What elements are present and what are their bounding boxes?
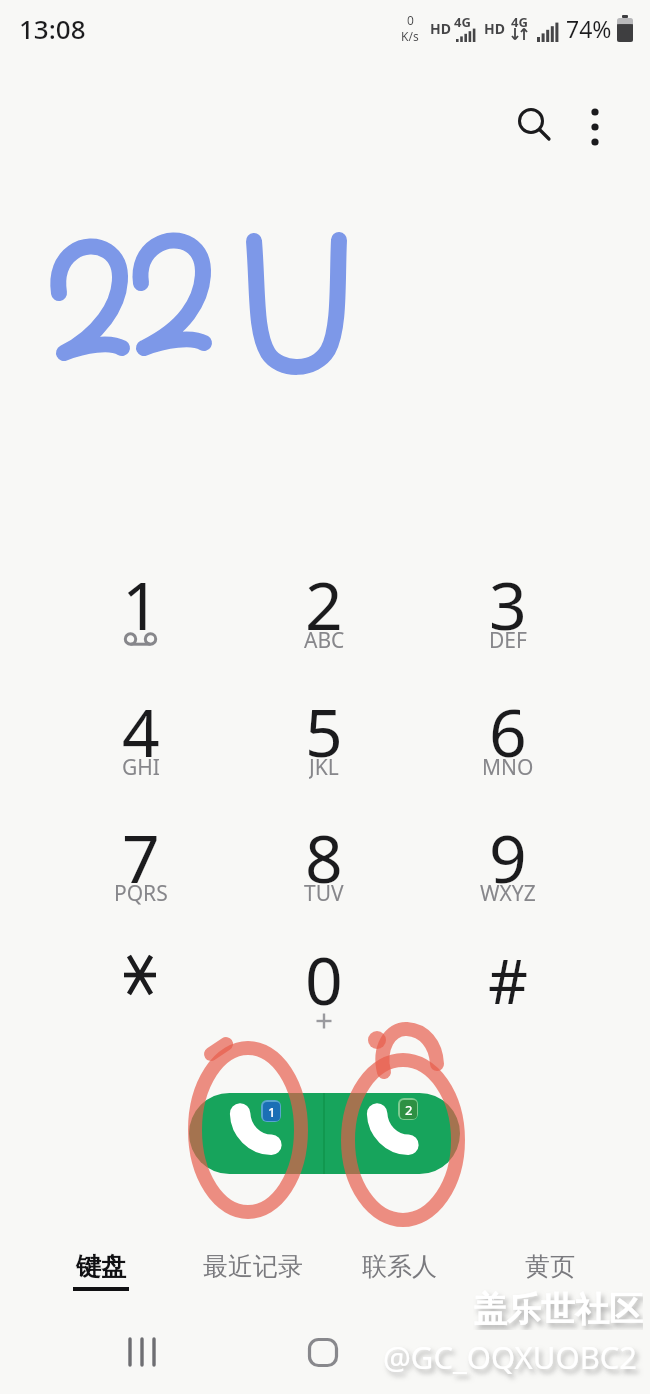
staticText: 联系人 <box>362 1251 437 1282</box>
staticText: 4G <box>454 13 471 29</box>
staticText: 74% <box>566 13 612 43</box>
button[interactable] <box>61 800 221 918</box>
staticText: 6 <box>489 686 527 772</box>
staticText: HD <box>430 19 451 38</box>
button[interactable]: 最近记录 <box>183 1240 323 1292</box>
staticText: 8 <box>305 812 343 898</box>
staticText: 5 <box>305 686 343 772</box>
button[interactable] <box>244 922 404 1032</box>
staticText: @GC_OQXUOBC2 <box>383 1336 638 1378</box>
button[interactable] <box>61 922 221 1032</box>
button[interactable] <box>244 547 404 665</box>
staticText: K/s <box>401 28 419 44</box>
button[interactable] <box>61 547 221 665</box>
staticText: JKL <box>309 753 339 781</box>
button[interactable] <box>571 99 619 147</box>
staticText: 0 <box>407 12 414 28</box>
button[interactable] <box>189 1093 323 1174</box>
button[interactable] <box>61 674 221 792</box>
staticText: 键盘 <box>76 1251 126 1282</box>
staticText: MNO <box>482 753 534 781</box>
button[interactable] <box>428 800 588 918</box>
staticText: HD <box>484 19 505 38</box>
staticText: 2 <box>305 559 343 645</box>
staticText: 2 <box>405 1101 413 1119</box>
staticText: 1 <box>268 1103 276 1121</box>
button[interactable] <box>118 1328 166 1376</box>
staticText: DEF <box>489 626 527 654</box>
button[interactable] <box>244 674 404 792</box>
button[interactable]: 联系人 <box>329 1240 469 1292</box>
button[interactable]: 键盘 <box>31 1240 171 1292</box>
staticText: 7 <box>122 812 160 898</box>
button[interactable]: 黄页 <box>480 1240 620 1292</box>
button[interactable] <box>325 1093 460 1174</box>
button[interactable] <box>428 547 588 665</box>
staticText: 0 <box>305 934 343 1020</box>
button[interactable] <box>428 674 588 792</box>
staticText: 1 <box>122 559 160 645</box>
staticText: TUV <box>304 879 344 907</box>
staticText: GHI <box>122 753 160 781</box>
button[interactable] <box>244 800 404 918</box>
staticText: 盖乐世社区 <box>473 1288 643 1330</box>
staticText: # <box>488 938 529 1018</box>
staticText: 黄页 <box>525 1251 575 1282</box>
button[interactable] <box>299 1328 347 1376</box>
button[interactable] <box>509 99 557 147</box>
staticText: 13:08 <box>19 11 86 46</box>
staticText: 9 <box>489 812 527 898</box>
staticText: ABC <box>304 626 345 654</box>
staticText: 4G <box>511 13 528 29</box>
staticText: 4 <box>122 686 160 772</box>
button[interactable] <box>428 922 588 1032</box>
staticText: WXYZ <box>480 879 536 907</box>
staticText: 最近记录 <box>203 1251 303 1282</box>
staticText: 3 <box>489 559 527 645</box>
staticText: PQRS <box>114 879 168 907</box>
